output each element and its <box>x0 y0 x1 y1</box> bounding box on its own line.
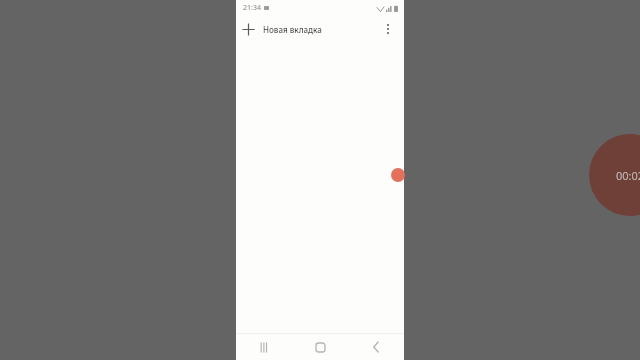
button[interactable]: Recording indicator <box>391 168 405 182</box>
staticText: 00:02 <box>616 168 640 183</box>
button[interactable]: New tab <box>236 17 260 41</box>
button[interactable]: Recent apps <box>236 334 292 360</box>
staticText: 21:34 <box>243 3 261 13</box>
button[interactable]: Back <box>348 334 404 360</box>
button[interactable]: Recording timer <box>589 134 640 216</box>
button[interactable]: More options <box>376 17 400 41</box>
button[interactable]: Новая вкладка <box>263 24 376 35</box>
button[interactable]: Home <box>292 334 348 360</box>
